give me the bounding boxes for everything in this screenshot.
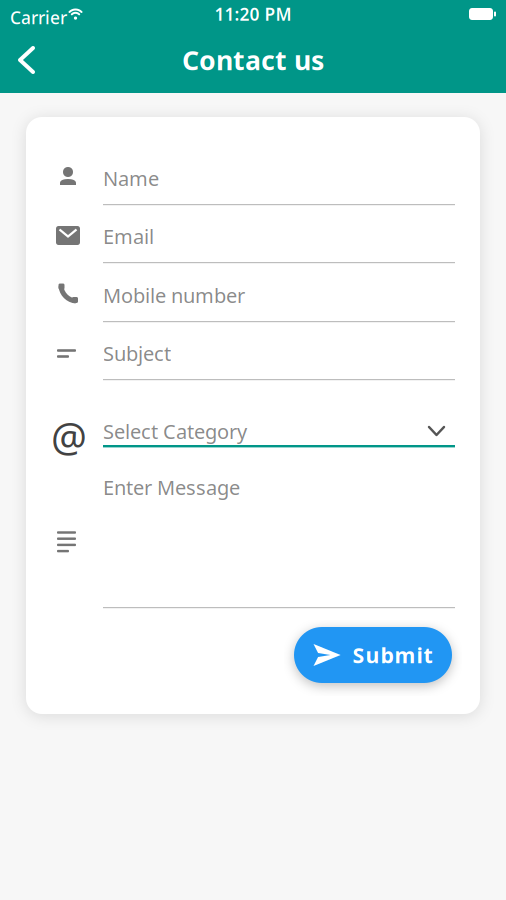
staticText: Carrier <box>10 6 67 29</box>
button[interactable]: Back <box>10 40 43 80</box>
button[interactable]: Email <box>103 219 455 265</box>
staticText: Mobile number <box>103 282 245 309</box>
staticText: Select Category <box>103 418 247 445</box>
button[interactable]: Select Category <box>103 414 455 448</box>
staticText: 11:20 PM <box>214 2 291 25</box>
staticText: Submit <box>352 641 432 669</box>
button[interactable]: Name <box>103 161 455 207</box>
staticText: Subject <box>103 340 171 367</box>
staticText: Name <box>103 165 159 192</box>
staticText: Enter Message <box>103 474 240 501</box>
staticText: Contact us <box>182 42 324 78</box>
staticText: @ <box>51 410 87 463</box>
button[interactable]: Mobile number <box>103 278 455 324</box>
button[interactable]: Subject <box>103 336 455 382</box>
button[interactable]: Submit <box>294 627 452 683</box>
staticText: Email <box>103 223 154 250</box>
button[interactable]: Enter Message <box>103 467 455 610</box>
